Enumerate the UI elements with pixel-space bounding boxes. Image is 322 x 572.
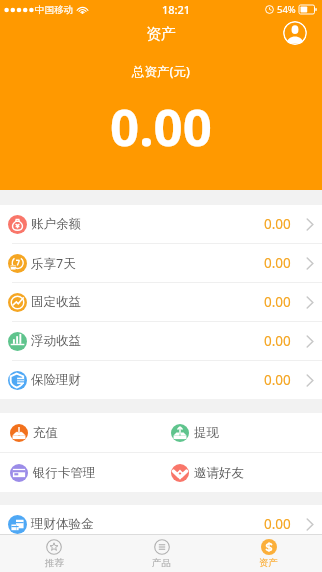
button[interactable]: 推荐 <box>0 535 108 572</box>
button[interactable]: 资产 <box>215 535 322 572</box>
button[interactable]: 浮动收益 <box>0 322 322 360</box>
button[interactable]: 银行卡管理 <box>0 453 161 492</box>
staticText: 保险理财 <box>31 372 81 388</box>
button[interactable]: 提现 <box>161 413 322 452</box>
staticText: 资产 <box>259 557 278 569</box>
staticText: 邀请好友 <box>194 465 244 481</box>
staticText: 0.00 <box>264 293 291 311</box>
button[interactable]: 邀请好友 <box>161 453 322 492</box>
staticText: 充值 <box>33 425 58 441</box>
button[interactable]: 理财体验金 <box>0 505 322 543</box>
staticText: 资产 <box>146 25 176 44</box>
staticText: 推荐 <box>45 557 64 569</box>
staticText: 总资产(元) <box>132 63 190 80</box>
button[interactable]: 固定收益 <box>0 283 322 321</box>
staticText: 0.00 <box>264 515 291 533</box>
staticText: 固定收益 <box>31 294 81 310</box>
staticText: 浮动收益 <box>31 333 81 349</box>
staticText: 理财体验金 <box>31 516 94 532</box>
staticText: 账户余额 <box>31 216 81 232</box>
staticText: 0.00 <box>264 215 291 233</box>
staticText: 银行卡管理 <box>33 465 96 481</box>
staticText: 0.00 <box>264 332 291 350</box>
button[interactable]: 充值 <box>0 413 161 452</box>
staticText: 18:21 <box>162 2 191 17</box>
staticText: 产品 <box>152 557 171 569</box>
staticText: 0.00 <box>264 371 291 389</box>
button[interactable]: Profile <box>283 21 307 45</box>
button[interactable]: 保险理财 <box>0 361 322 399</box>
staticText: 乐享7天 <box>31 255 76 272</box>
staticText: 提现 <box>194 425 219 441</box>
button[interactable]: 乐享7天 <box>0 244 322 282</box>
staticText: 中国移动 <box>35 4 73 16</box>
button[interactable]: 账户余额 <box>0 205 322 243</box>
staticText: 0.00 <box>110 91 212 160</box>
staticText: 54% <box>277 3 296 16</box>
button[interactable]: 产品 <box>108 535 215 572</box>
staticText: 0.00 <box>264 254 291 272</box>
